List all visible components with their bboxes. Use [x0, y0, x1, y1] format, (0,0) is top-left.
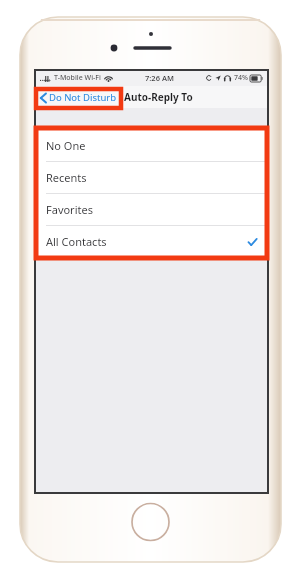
button[interactable]: No One	[35, 130, 268, 161]
button[interactable]: All Contacts	[35, 226, 268, 257]
staticText: T-Mobile Wi-Fi	[54, 73, 101, 83]
staticText: Do Not Disturb	[49, 91, 117, 104]
staticText: Favorites	[46, 202, 93, 217]
staticText: Recents	[46, 170, 87, 185]
button[interactable]: Recents	[35, 162, 268, 193]
staticText: 74%	[234, 73, 248, 83]
staticText: All Contacts	[46, 234, 107, 249]
button[interactable]: Favorites	[35, 194, 268, 225]
staticText: Auto-Reply To	[124, 90, 193, 104]
button[interactable]: Do Not Disturb	[38, 89, 119, 106]
staticText: 7:26 AM	[145, 73, 174, 83]
staticText: No One	[46, 138, 86, 153]
